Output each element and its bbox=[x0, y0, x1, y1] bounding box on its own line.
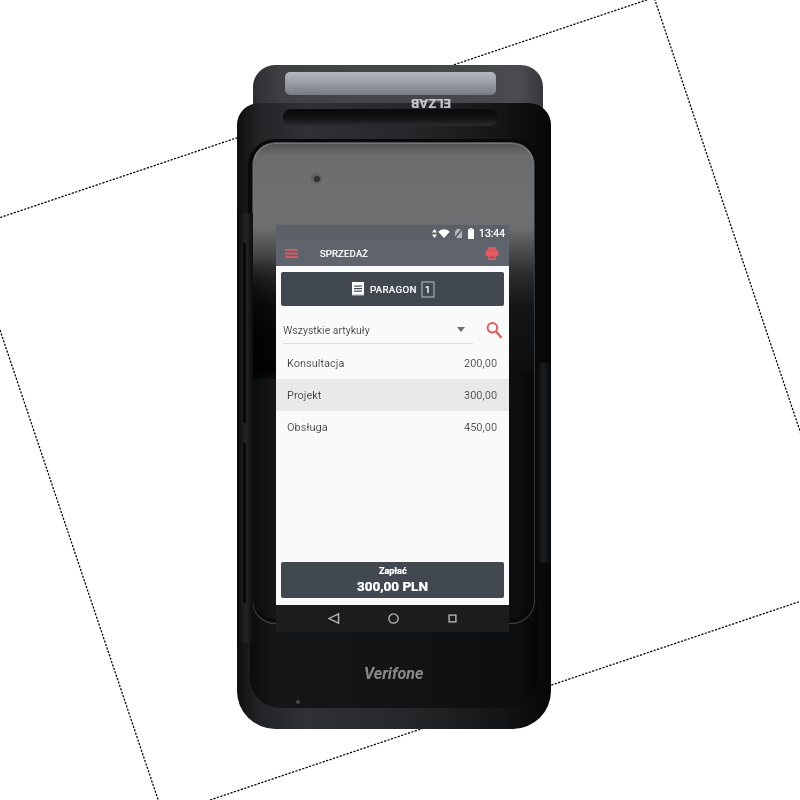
staticText: PARAGON bbox=[370, 284, 417, 295]
staticText: Konsultacja bbox=[287, 357, 345, 370]
staticText: Obsługa bbox=[287, 421, 328, 434]
button[interactable]: Open navigation menu bbox=[276, 241, 306, 266]
staticText: 200,00 bbox=[464, 357, 498, 370]
staticText: 300,00 PLN bbox=[357, 578, 428, 594]
button[interactable]: Wszystkie artykuły bbox=[283, 312, 473, 347]
button[interactable]: Home bbox=[378, 605, 408, 632]
staticText: 450,00 bbox=[464, 421, 498, 434]
staticText: Verifone bbox=[364, 664, 424, 683]
staticText: ELZAB bbox=[410, 96, 451, 111]
staticText: 1 bbox=[425, 284, 431, 295]
button[interactable]: Obsługa bbox=[276, 411, 509, 443]
button[interactable]: Recent apps bbox=[437, 605, 467, 632]
button[interactable]: Projekt bbox=[276, 379, 509, 411]
staticText: 13:44 bbox=[479, 227, 506, 239]
button[interactable]: PARAGON bbox=[281, 272, 504, 306]
button[interactable]: Konsultacja bbox=[276, 347, 509, 379]
button[interactable]: Back bbox=[319, 605, 349, 632]
staticText: Projekt bbox=[287, 389, 322, 402]
staticText: SPRZEDAŻ bbox=[320, 248, 369, 259]
button[interactable]: Zapłać bbox=[281, 562, 504, 598]
staticText: Zapłać bbox=[379, 566, 407, 577]
staticText: 300,00 bbox=[464, 389, 498, 402]
staticText: Wszystkie artykuły bbox=[283, 324, 370, 336]
button[interactable]: Search bbox=[483, 319, 505, 341]
button[interactable]: Print receipt bbox=[477, 241, 507, 266]
